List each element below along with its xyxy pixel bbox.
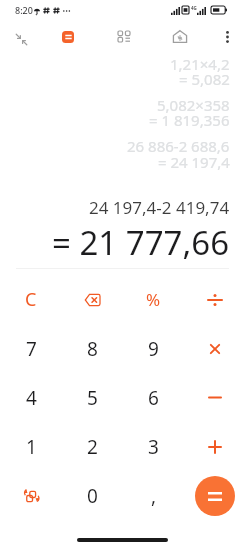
button[interactable] (184, 422, 245, 471)
button[interactable]: , (123, 471, 184, 520)
staticText: 5 (87, 385, 98, 411)
button[interactable]: 3 (123, 422, 184, 471)
button[interactable]: 6 (123, 373, 184, 422)
button[interactable]: % (123, 275, 184, 324)
staticText: 7 (26, 336, 37, 362)
button[interactable]: 5 (62, 373, 123, 422)
staticText: 1 (26, 434, 37, 460)
staticText: 26 886-2 688,6 (127, 136, 230, 156)
button[interactable]: 2 (62, 422, 123, 471)
button[interactable]: Mortgage calculator (163, 19, 197, 53)
staticText: = 21 777,66 (52, 220, 230, 265)
staticText: = 5,082 (179, 69, 230, 89)
button[interactable] (184, 373, 245, 422)
staticText: 8 (87, 336, 98, 362)
button[interactable]: 8 (62, 324, 123, 373)
staticText: C (25, 287, 37, 312)
button[interactable]: 7 (0, 324, 62, 373)
staticText: 0 (87, 483, 98, 509)
staticText: 8:20 (15, 4, 33, 16)
staticText: % (146, 288, 161, 311)
staticText: 24 197,4-2 419,74 (89, 196, 230, 219)
button[interactable]: 4 (0, 373, 62, 422)
staticText: = 1 819,356 (149, 110, 230, 130)
staticText: 4G (191, 5, 197, 11)
staticText: 2 (87, 434, 98, 460)
button[interactable]: 9 (123, 324, 184, 373)
button[interactable]: 0 (62, 471, 123, 520)
button[interactable]: Equals (195, 476, 235, 516)
button[interactable]: 1 (0, 422, 62, 471)
button[interactable]: C (0, 275, 62, 324)
staticText: , (151, 483, 157, 509)
button[interactable]: Converters (107, 19, 141, 53)
staticText: 5,082×358 (157, 95, 230, 115)
button[interactable] (184, 324, 245, 373)
staticText: 1,21×4,2 (170, 54, 230, 74)
staticText: 6 (148, 385, 159, 411)
staticText: 9 (148, 336, 159, 362)
button[interactable]: More options (211, 20, 244, 53)
button[interactable] (184, 275, 245, 324)
staticText: = 24 197,4 (158, 152, 230, 172)
button[interactable]: Convert (0, 471, 62, 520)
staticText: 3 (148, 434, 159, 460)
button[interactable]: Calculator (51, 20, 85, 54)
button[interactable]: Collapse (4, 22, 38, 56)
button[interactable]: Backspace (62, 275, 123, 324)
staticText: 4 (26, 385, 37, 411)
